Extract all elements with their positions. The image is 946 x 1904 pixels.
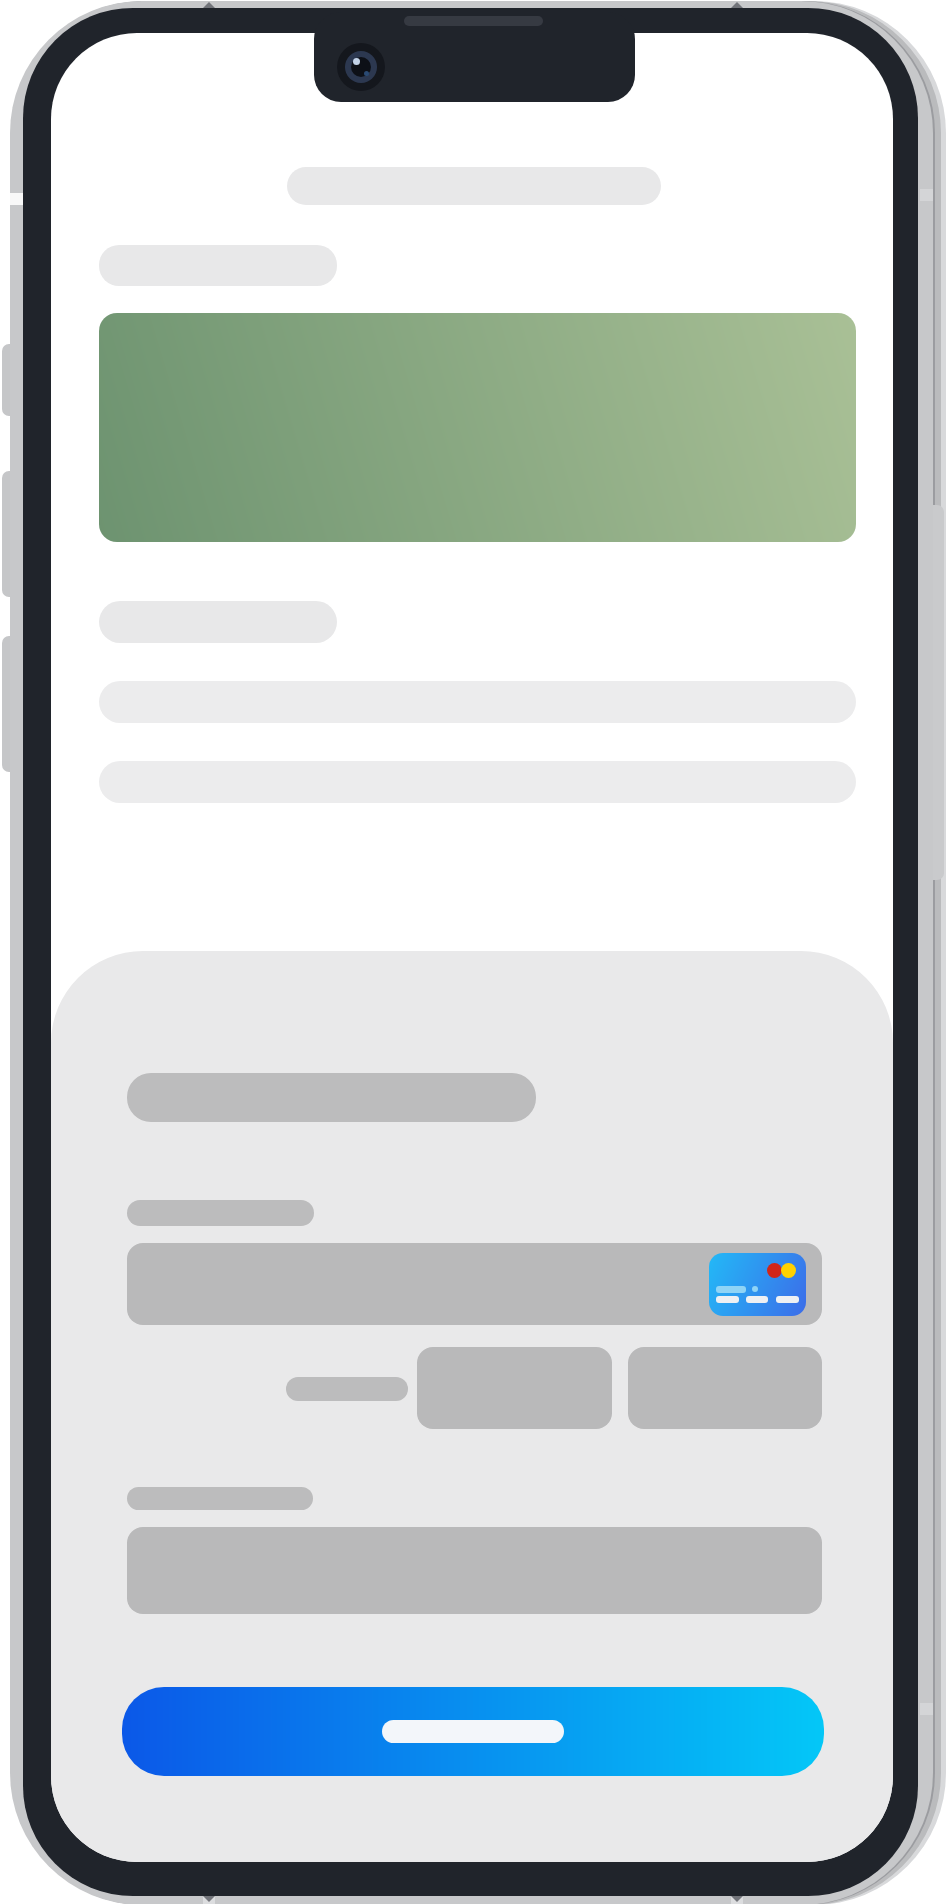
button[interactable] — [127, 1243, 822, 1325]
button[interactable] — [417, 1347, 612, 1429]
button[interactable] — [122, 1687, 824, 1776]
button[interactable] — [628, 1347, 822, 1429]
button[interactable] — [99, 313, 856, 542]
